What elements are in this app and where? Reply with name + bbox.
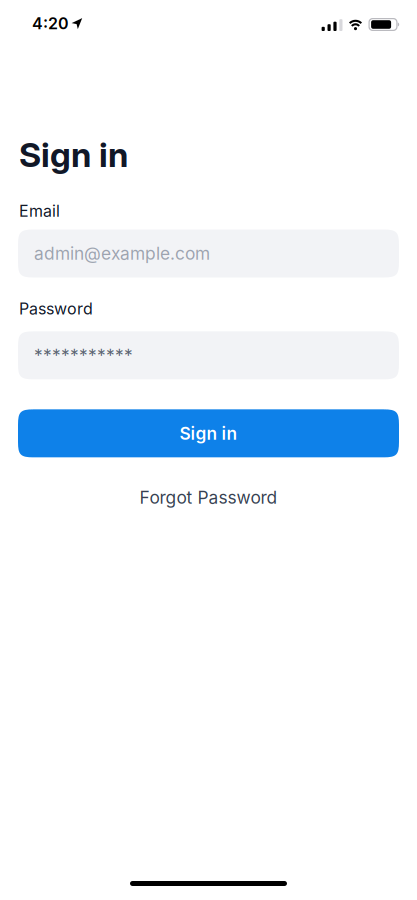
staticText: Password bbox=[19, 299, 93, 318]
button[interactable]: Email bbox=[18, 229, 399, 277]
staticText: Sign in bbox=[19, 134, 128, 175]
staticText: 4:20 bbox=[32, 14, 69, 33]
staticText: admin@example.com bbox=[34, 243, 210, 264]
staticText: *********** bbox=[34, 345, 133, 366]
staticText: Forgot Password bbox=[139, 487, 277, 508]
staticText: Email bbox=[19, 201, 60, 220]
button[interactable]: Sign in bbox=[18, 409, 399, 457]
staticText: Sign in bbox=[179, 423, 237, 444]
button[interactable]: Forgot Password bbox=[139, 487, 277, 508]
button[interactable]: Password bbox=[18, 331, 399, 379]
